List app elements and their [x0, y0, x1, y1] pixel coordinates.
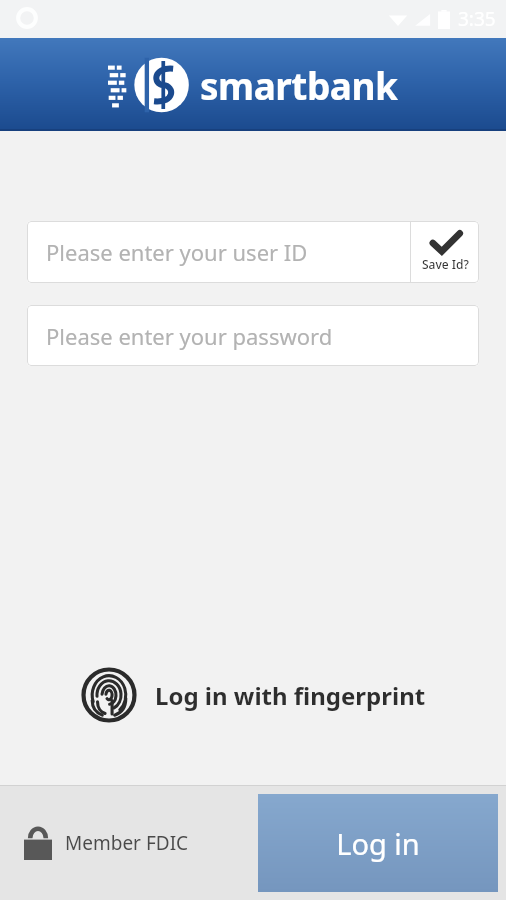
- staticText: Please enter your password: [46, 321, 333, 351]
- button[interactable]: Please enter your user ID: [27, 221, 410, 283]
- button[interactable]: Member FDIC: [24, 826, 189, 860]
- staticText: 3:35: [458, 6, 496, 32]
- button[interactable]: Log in: [258, 794, 498, 892]
- button[interactable]: Please enter your password: [27, 305, 479, 366]
- staticText: Save Id?: [422, 256, 469, 272]
- staticText: smartbank: [200, 60, 398, 110]
- staticText: Please enter your user ID: [46, 237, 308, 267]
- staticText: Log in with fingerprint: [155, 679, 426, 712]
- button[interactable]: Log in with fingerprint: [0, 667, 506, 723]
- staticText: Member FDIC: [65, 830, 189, 856]
- staticText: Log in: [336, 824, 420, 863]
- button[interactable]: Save Id: [411, 221, 479, 283]
